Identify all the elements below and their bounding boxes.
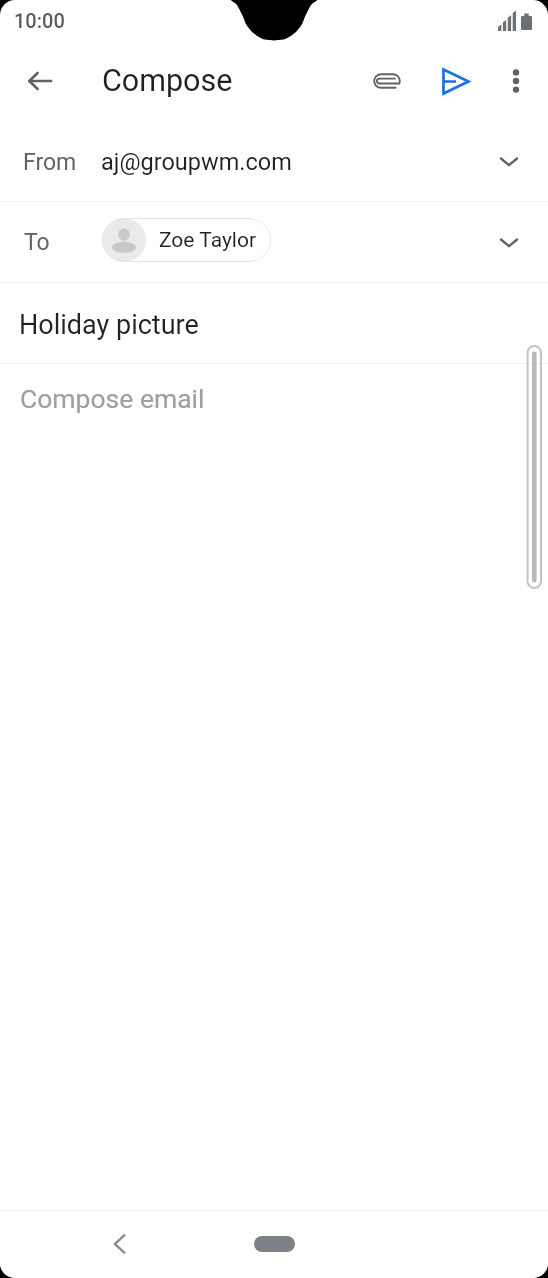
staticText: Compose email: [20, 383, 205, 414]
staticText: Holiday picture: [19, 309, 199, 341]
button[interactable]: Send: [432, 57, 480, 105]
button[interactable]: Back: [98, 1222, 142, 1266]
staticText: To: [24, 229, 50, 256]
staticText: From: [23, 149, 77, 176]
staticText: 10:00: [14, 9, 65, 32]
button[interactable]: Back: [16, 57, 64, 105]
staticText: Compose: [102, 63, 233, 99]
button[interactable]: From: [0, 112, 548, 201]
button[interactable]: Home: [239, 1228, 309, 1262]
button[interactable]: Zoe Taylor: [102, 218, 271, 262]
button[interactable]: Holiday picture: [0, 283, 548, 363]
button[interactable]: To: [0, 202, 548, 282]
button[interactable]: Compose email: [0, 364, 548, 684]
button[interactable]: Attach file: [363, 57, 411, 105]
staticText: aj@groupwm.com: [101, 148, 292, 176]
staticText: Zoe Taylor: [159, 228, 257, 253]
button[interactable]: More options: [492, 57, 540, 105]
